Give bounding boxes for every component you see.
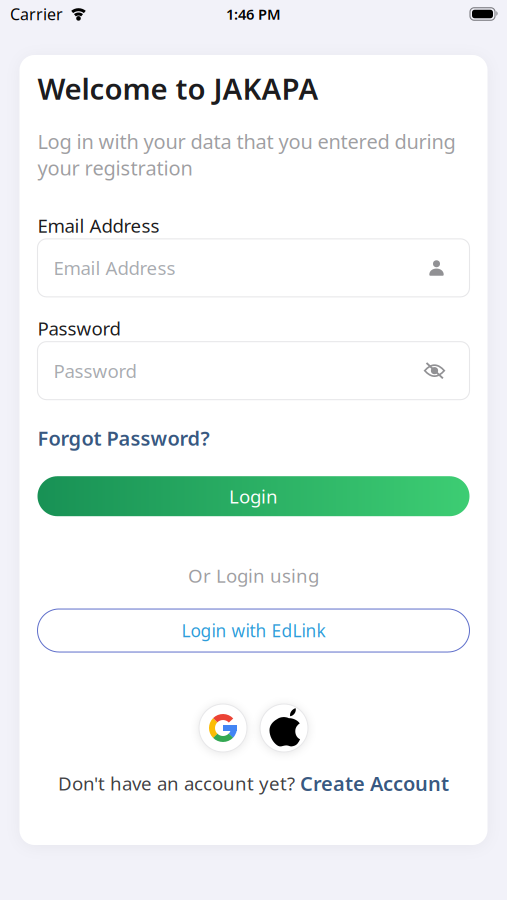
button[interactable]: Login with Google [199,704,247,752]
button[interactable]: Email Address [37,239,469,297]
staticText: Log in with your data that you entered d… [37,128,455,181]
staticText: 1:46 PM [226,4,281,24]
button[interactable]: Create Account [300,770,449,797]
staticText: Password [37,316,120,341]
staticText: Or Login using [188,563,319,588]
staticText: Create Account [300,770,449,797]
staticText: Login [229,484,278,509]
staticText: Email Address [53,255,175,280]
staticText: Don't have an account yet? [58,771,300,796]
button[interactable]: Login with Apple [260,704,308,752]
button[interactable]: Password [37,342,469,400]
button[interactable]: Forgot Password? [37,425,209,451]
button[interactable]: Login [37,476,469,516]
staticText: Login with EdLink [181,619,325,642]
staticText: Email Address [37,213,159,238]
staticText: Carrier [10,3,63,25]
staticText: Forgot Password? [37,425,209,451]
staticText: Password [53,358,136,383]
staticText: Welcome to JAKAPA [37,69,318,108]
button[interactable]: Login with EdLink [37,609,469,652]
